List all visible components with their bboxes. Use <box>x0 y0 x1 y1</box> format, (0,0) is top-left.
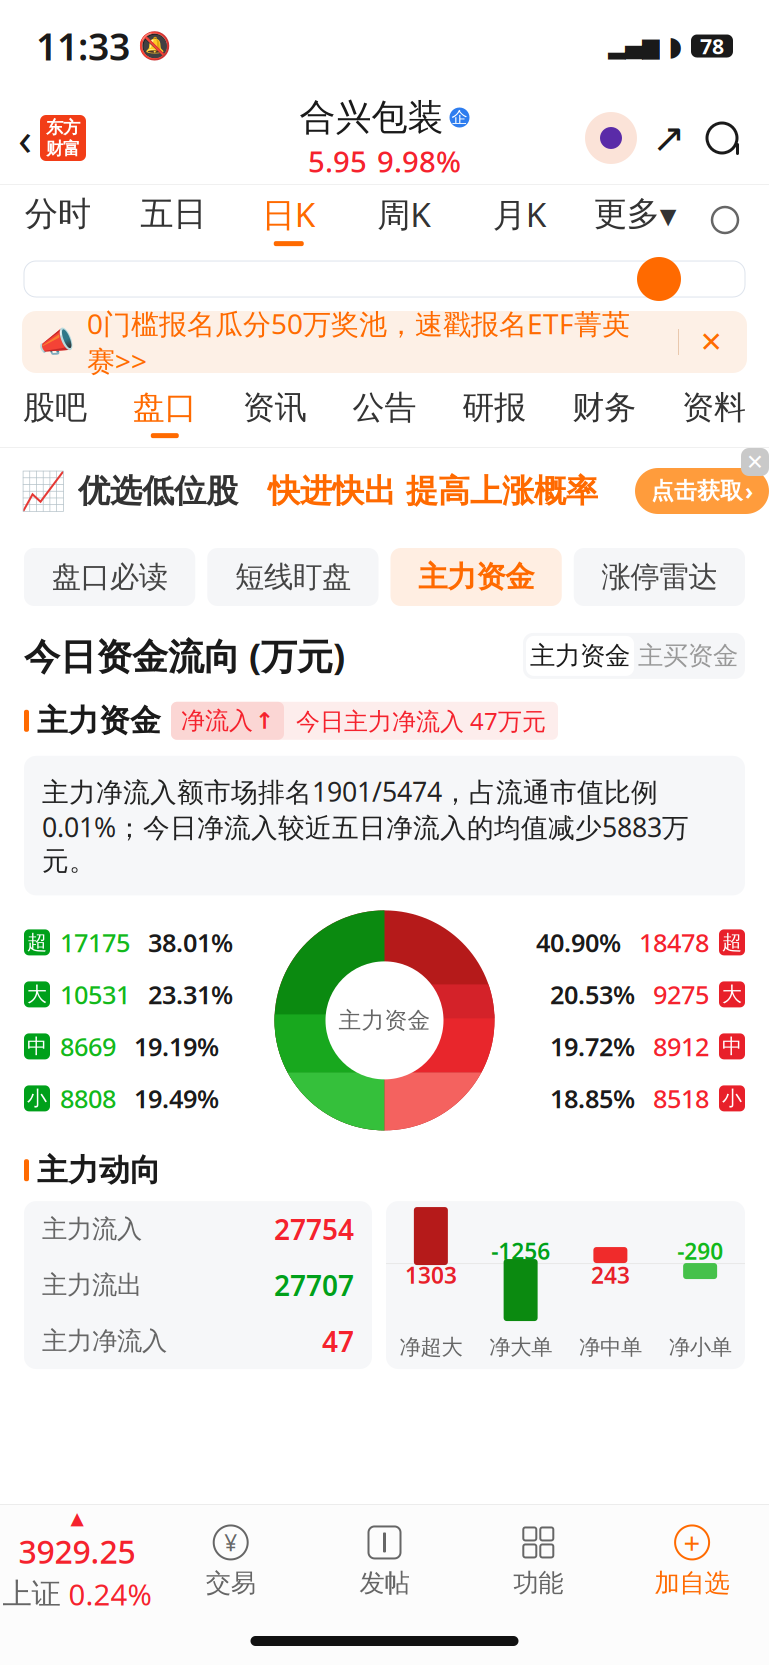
staticText: ↗ <box>652 115 686 161</box>
button[interactable]: 主力资金 <box>526 636 634 676</box>
staticText: 资料 <box>682 388 746 427</box>
staticText: 优选低位股 <box>78 471 238 511</box>
staticText: 上证 <box>2 1576 60 1612</box>
staticText: ▂▄▆ <box>608 33 659 59</box>
staticText: 今日资金流向 (万元) <box>24 632 345 680</box>
button[interactable]: 主力资金 <box>390 548 562 606</box>
button[interactable]: 周K <box>346 185 462 255</box>
staticText: 交易 <box>206 1567 256 1598</box>
staticText: 10531 <box>60 978 130 1011</box>
button[interactable]: AI 助手 <box>585 112 643 164</box>
staticText: 0.24% <box>68 1575 151 1614</box>
staticText: ✕ <box>746 450 764 474</box>
staticText: 1303 <box>405 1260 457 1290</box>
staticText: -290 <box>677 1236 723 1266</box>
staticText: + <box>684 1523 701 1562</box>
staticText: 研报 <box>462 388 526 427</box>
button[interactable]: 点击获取 <box>635 468 769 514</box>
staticText: 📈 <box>20 470 66 512</box>
staticText: 净流入 <box>181 706 253 736</box>
button[interactable]: 更多▾ <box>577 185 693 255</box>
button[interactable]: 分享 <box>643 112 695 164</box>
staticText: 9.98% <box>377 142 461 181</box>
staticText: 盘口 <box>133 388 197 427</box>
staticText: 更多▾ <box>594 193 677 234</box>
button[interactable]: 公告 <box>330 383 439 447</box>
staticText: 净大单 <box>489 1334 552 1360</box>
button[interactable]: 日K <box>231 185 346 255</box>
button[interactable]: 📣 <box>22 311 747 373</box>
button[interactable]: 股吧 <box>0 383 110 447</box>
staticText: 11:33 <box>36 21 130 71</box>
staticText: 五日 <box>140 193 206 234</box>
staticText: 23.31% <box>148 978 233 1011</box>
staticText: 涨停雷达 <box>601 559 717 595</box>
staticText: 9275 <box>653 978 709 1011</box>
staticText: 主力流出 <box>42 1269 142 1301</box>
staticText: 27754 <box>274 1210 354 1248</box>
staticText: 小 <box>722 1086 742 1111</box>
button[interactable]: 返回 <box>0 108 86 168</box>
staticText: 中 <box>722 1034 742 1059</box>
button[interactable]: ▲ <box>0 1508 154 1614</box>
staticText: 功能 <box>513 1567 563 1598</box>
staticText: 快进快出 提高上涨概率 <box>268 471 598 511</box>
staticText: 大 <box>27 982 47 1007</box>
button[interactable]: 研报 <box>439 383 549 447</box>
staticText: 38.01% <box>148 926 233 959</box>
staticText: ¥ <box>224 1527 237 1557</box>
staticText: 超 <box>27 930 47 955</box>
button[interactable]: 涨停雷达 <box>574 548 745 606</box>
staticText: 19.49% <box>134 1082 219 1115</box>
button[interactable]: 发帖 <box>308 1516 461 1606</box>
button[interactable]: 搜索 <box>695 111 769 165</box>
staticText: ◗ <box>668 31 682 61</box>
staticText: 47 <box>322 1322 354 1360</box>
button[interactable]: + <box>615 1516 769 1606</box>
button[interactable]: 主买资金 <box>634 636 742 676</box>
button[interactable]: 盘口必读 <box>24 548 195 606</box>
staticText: ✕ <box>699 326 722 358</box>
staticText: 17175 <box>60 926 130 959</box>
staticText: 主力流入 <box>42 1213 142 1245</box>
staticText: 主力动向 <box>37 1151 161 1189</box>
button[interactable]: 功能 <box>461 1516 615 1606</box>
button[interactable]: 五日 <box>115 185 231 255</box>
staticText: 18.85% <box>550 1082 635 1115</box>
staticText: 3929.25 <box>18 1530 135 1573</box>
button[interactable]: 盘口 <box>110 383 220 447</box>
staticText: 243 <box>591 1260 630 1290</box>
staticText: 主力资金 <box>37 702 161 740</box>
staticText: 主力净流入额市场排名1901/5474，占流通市值比例 0.01%；今日净流入较… <box>42 774 689 877</box>
staticText: 主力资金 <box>418 559 534 595</box>
staticText: 40.90% <box>536 926 621 959</box>
staticText: 27707 <box>274 1266 354 1304</box>
button[interactable]: 资讯 <box>220 383 330 447</box>
staticText: 点击获取 <box>651 477 743 505</box>
staticText: 中 <box>27 1034 47 1059</box>
button[interactable]: 月K <box>462 185 577 255</box>
button[interactable]: ¥ <box>154 1516 308 1606</box>
staticText: ▲ <box>70 1508 83 1528</box>
staticText: 企 <box>451 108 467 127</box>
staticText: 资讯 <box>243 388 307 427</box>
button[interactable]: 资料 <box>659 383 769 447</box>
staticText: -1256 <box>491 1236 550 1266</box>
staticText: 日K <box>262 192 316 236</box>
button[interactable]: 财务 <box>549 383 659 447</box>
button[interactable]: 设置 <box>693 185 757 255</box>
button[interactable]: 分时 <box>0 185 115 255</box>
staticText: 主力净流入 <box>42 1325 167 1357</box>
staticText: 财务 <box>572 388 636 427</box>
staticText: 🔕 <box>138 31 171 61</box>
staticText: 19.19% <box>134 1030 219 1063</box>
staticText: ‹ <box>18 108 32 168</box>
staticText: 超 <box>722 930 742 955</box>
staticText: 月K <box>493 192 547 236</box>
button[interactable]: 短线盯盘 <box>207 548 378 606</box>
staticText: 主买资金 <box>638 640 738 671</box>
button[interactable]: 关闭广告 <box>741 448 769 476</box>
staticText: 8669 <box>60 1030 116 1063</box>
staticText: 小 <box>27 1086 47 1111</box>
staticText: 8808 <box>60 1082 116 1115</box>
